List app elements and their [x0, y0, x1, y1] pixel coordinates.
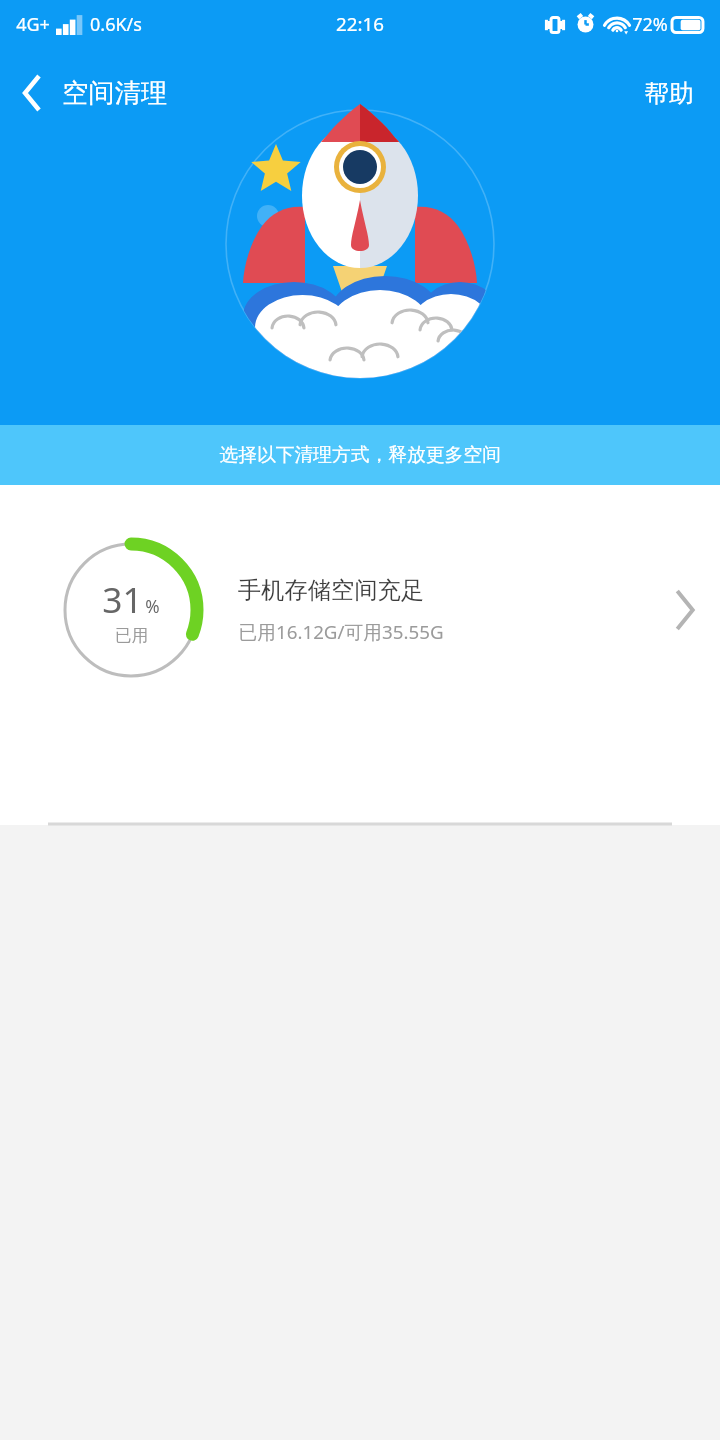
staticText: 空间清理: [62, 77, 167, 110]
staticText: 已用16.12G/可用35.55G: [238, 619, 444, 645]
staticText: 31: [102, 575, 143, 623]
button[interactable]: Back: [0, 48, 183, 138]
staticText: 72%: [632, 12, 668, 37]
staticText: 已用: [115, 625, 148, 646]
staticText: 手机存储空间充足: [238, 576, 424, 605]
other: Back: [22, 76, 42, 110]
staticText: 选择以下清理方式，释放更多空间: [219, 443, 501, 467]
button[interactable]: 帮助: [618, 48, 720, 138]
staticText: %: [145, 595, 160, 618]
staticText: 0.6K/s: [90, 12, 142, 37]
button[interactable]: 31: [0, 485, 720, 735]
staticText: 帮助: [644, 78, 694, 109]
staticText: 22:16: [336, 11, 384, 37]
staticText: 4G+: [16, 12, 50, 37]
